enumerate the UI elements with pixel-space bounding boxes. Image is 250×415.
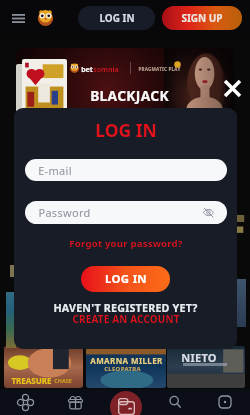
staticText: AMARNA MILLER — [90, 355, 163, 366]
staticText: LOG IN — [99, 11, 135, 25]
staticText: NIETO — [181, 350, 217, 365]
staticText: SIGN UP — [181, 11, 223, 25]
button[interactable]: Forgot your password? — [69, 237, 183, 250]
staticText: CHASE — [54, 377, 72, 384]
button[interactable]: Password — [25, 201, 227, 224]
staticText: somnia — [93, 65, 119, 75]
staticText: Password — [38, 205, 91, 220]
button[interactable]: Close — [222, 78, 242, 98]
button[interactable]: CREATE AN ACCOUNT — [72, 312, 180, 325]
staticText: E-mail — [38, 163, 72, 178]
button[interactable]: LOG IN — [78, 6, 155, 30]
button[interactable]: SIGN UP — [162, 6, 242, 30]
button[interactable]: Home — [36, 9, 55, 28]
button[interactable]: Wallet — [110, 391, 142, 415]
staticText: bet — [81, 65, 93, 75]
staticText: LOG IN — [105, 271, 147, 287]
staticText: LOG IN — [95, 118, 157, 142]
button[interactable]: Games — [0, 389, 50, 415]
button[interactable]: Search — [150, 389, 200, 415]
button[interactable]: E-mail — [25, 159, 227, 181]
staticText: TREASURE — [11, 375, 52, 386]
button[interactable]: Menu — [9, 9, 27, 27]
button[interactable]: Bonuses — [50, 389, 100, 415]
button[interactable]: Show password — [202, 206, 215, 219]
staticText: HAVEN'T REGISTERED YET? — [53, 301, 198, 316]
button[interactable]: More — [200, 389, 250, 415]
staticText: BLACKJACK — [90, 86, 169, 105]
button[interactable]: LOG IN — [81, 266, 170, 292]
staticText: PRAGMATIC PLAY — [138, 66, 181, 72]
staticText: CLEOPATRA — [104, 365, 141, 373]
